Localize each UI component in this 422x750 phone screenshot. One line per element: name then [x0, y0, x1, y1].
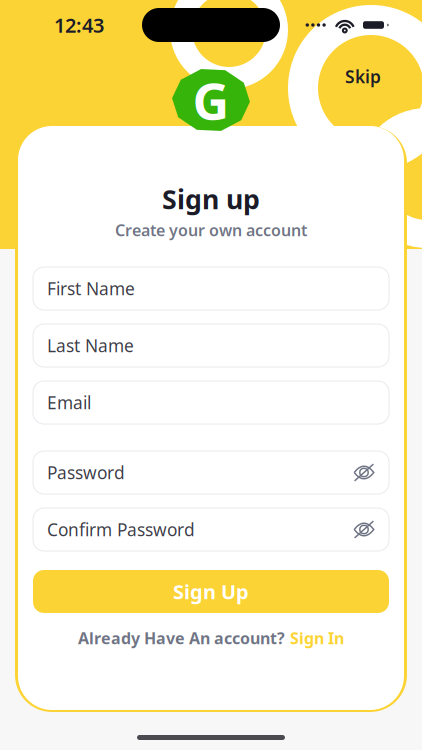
staticText: Create your own account	[115, 219, 307, 241]
staticText: Already Have An account?	[78, 627, 285, 649]
button[interactable]: Password	[33, 451, 389, 494]
button[interactable]: Skip	[345, 65, 381, 88]
staticText: Sign In	[290, 627, 344, 649]
staticText: Skip	[345, 65, 381, 88]
staticText: G	[192, 66, 229, 134]
button[interactable]: Sign Up	[33, 570, 389, 613]
button[interactable]: Last Name	[33, 324, 389, 367]
button[interactable]: First Name	[33, 267, 389, 310]
button[interactable]: Sign In	[290, 627, 344, 649]
staticText: Password	[47, 461, 125, 484]
staticText: Sign Up	[173, 578, 249, 605]
staticText: Confirm Password	[47, 518, 195, 541]
staticText: Sign up	[162, 181, 260, 217]
staticText: Email	[47, 391, 91, 414]
staticText: 12:43	[54, 12, 104, 38]
staticText: Last Name	[47, 334, 134, 357]
staticText: First Name	[47, 277, 135, 300]
button[interactable]: Email	[33, 381, 389, 424]
button[interactable]: Confirm Password	[33, 508, 389, 551]
